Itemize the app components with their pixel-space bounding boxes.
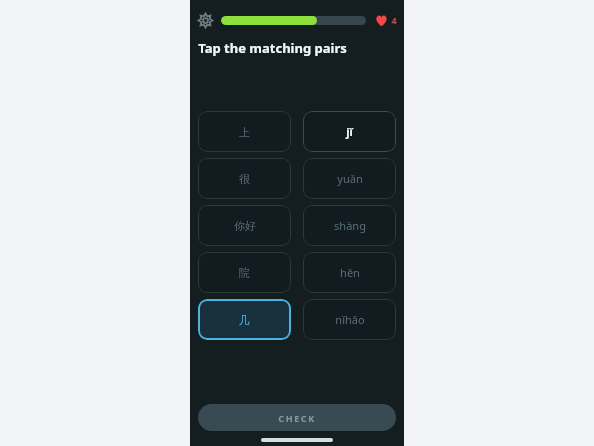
staticText: yuǎn [337, 171, 363, 186]
staticText: 很 [239, 172, 250, 186]
button[interactable]: 你好 [198, 205, 291, 246]
staticText: shàng [334, 218, 366, 233]
staticText: jǐ [346, 124, 353, 139]
staticText: 4 [391, 14, 397, 26]
staticText: 你好 [234, 219, 256, 233]
button[interactable]: shàng [303, 205, 396, 246]
button[interactable]: yuǎn [303, 158, 396, 199]
staticText: 上 [239, 125, 250, 139]
staticText: Tap the matching pairs [198, 39, 347, 57]
staticText: nǐhǎo [335, 312, 365, 327]
button[interactable]: nǐhǎo [303, 299, 396, 340]
button[interactable]: 上 [198, 111, 291, 152]
other: Lives [374, 13, 388, 27]
staticText: 几 [239, 313, 250, 327]
staticText: CHECK [278, 412, 316, 424]
button[interactable]: jǐ [303, 111, 396, 152]
button[interactable]: Settings [197, 12, 214, 29]
staticText: 院 [239, 266, 250, 280]
button[interactable]: hěn [303, 252, 396, 293]
staticText: hěn [340, 265, 360, 280]
button[interactable]: 院 [198, 252, 291, 293]
button[interactable]: 几 [198, 299, 291, 340]
button[interactable]: 很 [198, 158, 291, 199]
button[interactable]: CHECK [198, 404, 396, 431]
